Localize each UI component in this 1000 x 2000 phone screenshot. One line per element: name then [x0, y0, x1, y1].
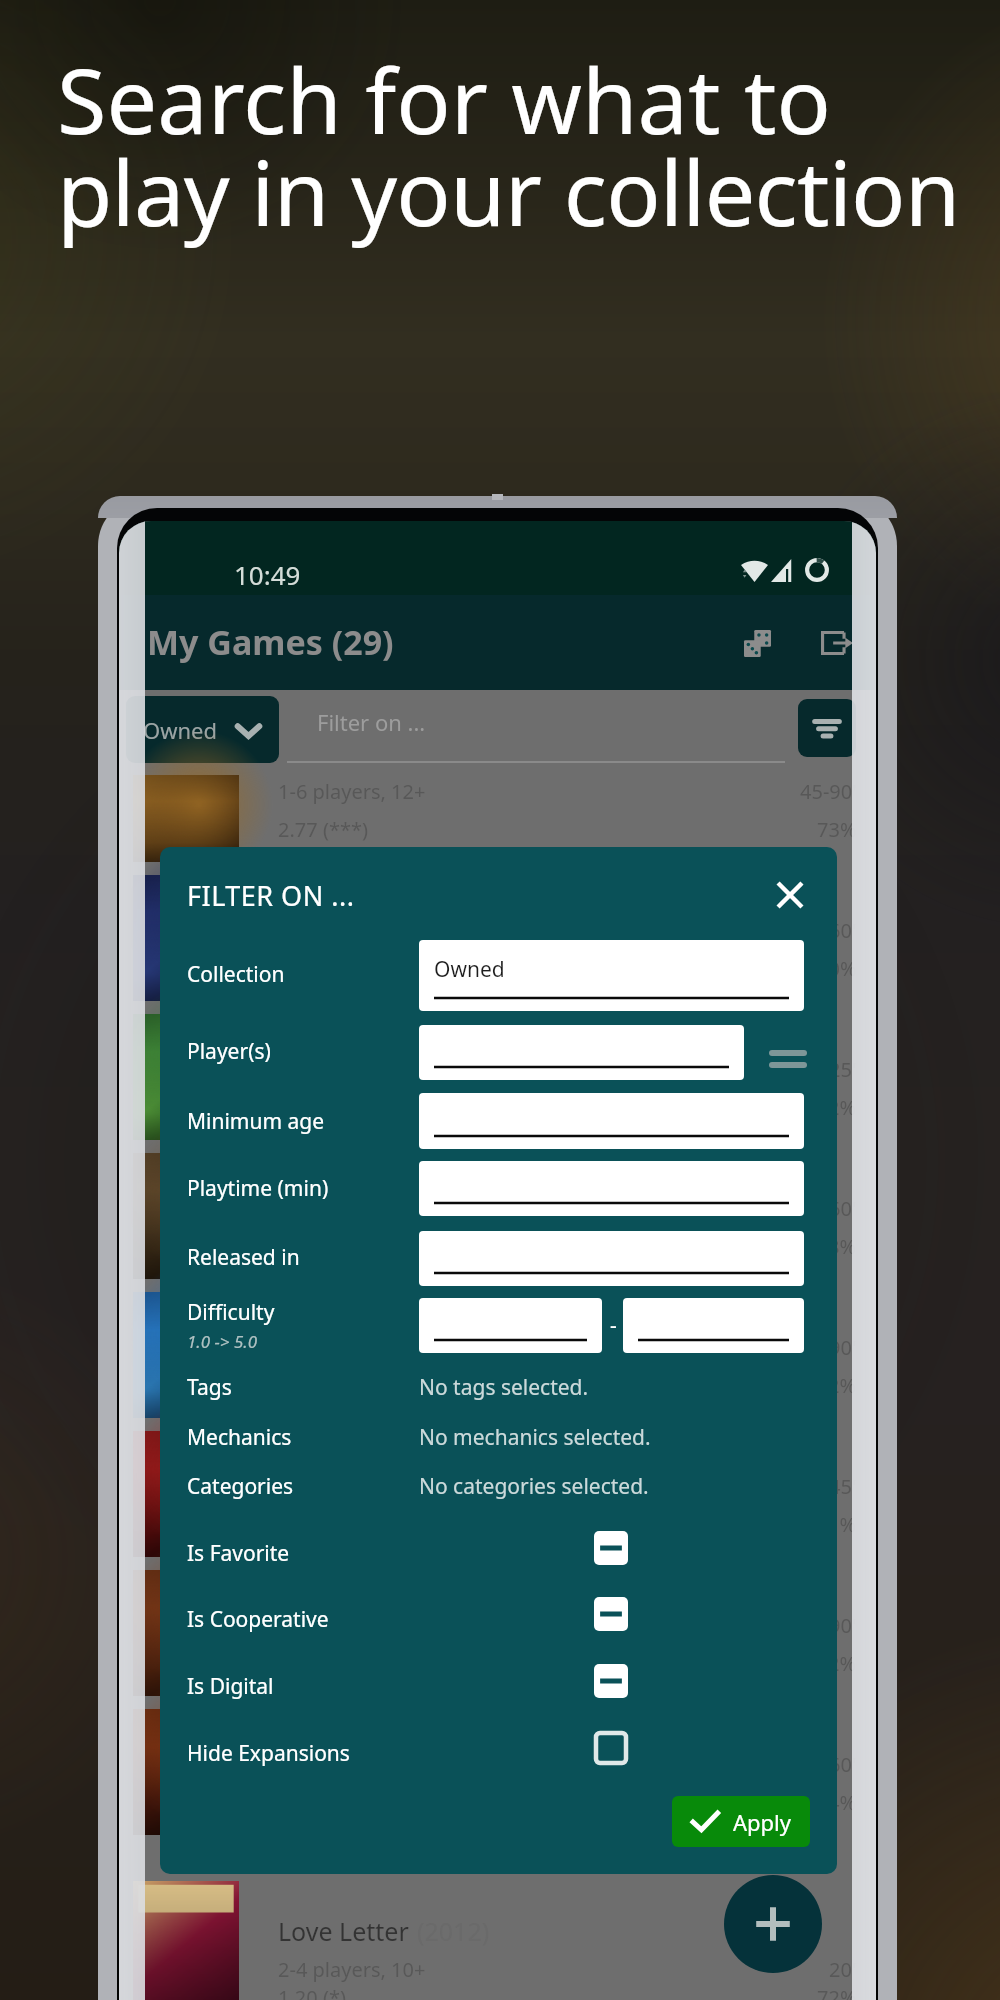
- staticText: Playtime (min): [187, 1174, 329, 1203]
- button[interactable]: 90': [119, 1286, 876, 1425]
- staticText: Is Favorite: [187, 1539, 290, 1568]
- staticText: 2%: [828, 1372, 857, 1399]
- button[interactable]: 1-6 players, 12+: [119, 769, 876, 869]
- button[interactable]: [419, 1093, 804, 1149]
- button[interactable]: Is Digital: [160, 1658, 837, 1710]
- staticText: 1.20 (*): [278, 1984, 346, 2000]
- staticText: Apply: [733, 1807, 792, 1837]
- staticText: 2%: [828, 1094, 857, 1121]
- staticText: Collection: [187, 960, 285, 989]
- staticText: Player(s): [187, 1037, 271, 1066]
- staticText: 2-4 players, 10+: [278, 1956, 426, 1983]
- staticText: 4%: [828, 1789, 857, 1816]
- staticText: 73%: [817, 816, 857, 843]
- button[interactable]: Random game: [732, 618, 782, 668]
- button[interactable]: Log out: [812, 618, 862, 668]
- staticText: Owned: [143, 715, 218, 745]
- staticText: No mechanics selected.: [419, 1423, 651, 1452]
- button[interactable]: Is Cooperative: [160, 1591, 837, 1643]
- button[interactable]: 60': [119, 1147, 876, 1286]
- button[interactable]: Close dialog: [761, 866, 818, 923]
- staticText: 25': [829, 1056, 857, 1083]
- staticText: No tags selected.: [419, 1373, 589, 1402]
- staticText: 60': [829, 1751, 857, 1778]
- staticText: 90': [829, 1612, 857, 1639]
- button[interactable]: Owned: [126, 696, 279, 763]
- staticText: Tags: [187, 1373, 232, 1402]
- staticText: Search for what to: [57, 38, 831, 161]
- staticText: Released in: [187, 1243, 300, 1272]
- staticText: Love Letter: [278, 1914, 409, 1948]
- staticText: 10:49: [234, 557, 301, 592]
- staticText: 45': [829, 1473, 857, 1500]
- button[interactable]: Add game: [724, 1875, 822, 1973]
- staticText: My Games (29): [147, 619, 394, 665]
- button[interactable]: Apply: [672, 1796, 810, 1847]
- staticText: 45-90': [800, 778, 857, 805]
- staticText: 20': [829, 1956, 857, 1983]
- button[interactable]: Hide Expansions: [160, 1725, 837, 1777]
- button[interactable]: Love Letter: [119, 1842, 876, 2000]
- staticText: 8%: [828, 1233, 857, 1260]
- button[interactable]: [419, 1298, 602, 1353]
- staticText: 2.77 (***): [278, 816, 368, 843]
- staticText: Mechanics: [187, 1423, 292, 1452]
- button[interactable]: [419, 1161, 804, 1216]
- button[interactable]: 60': [119, 1703, 876, 1842]
- staticText: 1.0 -> 5.0: [187, 1330, 258, 1353]
- button[interactable]: Owned: [419, 940, 804, 1011]
- staticText: Difficulty: [187, 1298, 275, 1327]
- button[interactable]: 60': [119, 869, 876, 1008]
- staticText: 1-6 players, 12+: [278, 778, 426, 805]
- staticText: 60': [829, 1195, 857, 1222]
- button[interactable]: 25': [119, 1008, 876, 1147]
- staticText: Categories: [187, 1472, 294, 1501]
- staticText: play in your collection: [57, 130, 960, 253]
- staticText: 2%: [828, 1650, 857, 1677]
- staticText: Hide Expansions: [187, 1739, 350, 1768]
- staticText: 1%: [828, 1511, 857, 1538]
- button[interactable]: [419, 1025, 744, 1080]
- staticText: Is Cooperative: [187, 1605, 329, 1634]
- staticText: 60': [829, 917, 857, 944]
- staticText: 50%: [817, 955, 857, 982]
- button[interactable]: Filter: [798, 699, 856, 757]
- staticText: 90': [829, 1334, 857, 1361]
- staticText: Owned: [434, 955, 505, 984]
- button[interactable]: [419, 1231, 804, 1286]
- staticText: Minimum age: [187, 1107, 325, 1136]
- button[interactable]: 45': [119, 1425, 876, 1564]
- button[interactable]: 90': [119, 1564, 876, 1703]
- staticText: Filter on ...: [317, 707, 426, 737]
- staticText: No categories selected.: [419, 1472, 649, 1501]
- staticText: FILTER ON ...: [187, 877, 355, 914]
- staticText: Is Digital: [187, 1672, 274, 1701]
- staticText: -: [610, 1311, 617, 1340]
- button[interactable]: Is Favorite: [160, 1525, 837, 1577]
- staticText: 72%: [817, 1984, 857, 2000]
- button[interactable]: [623, 1298, 804, 1353]
